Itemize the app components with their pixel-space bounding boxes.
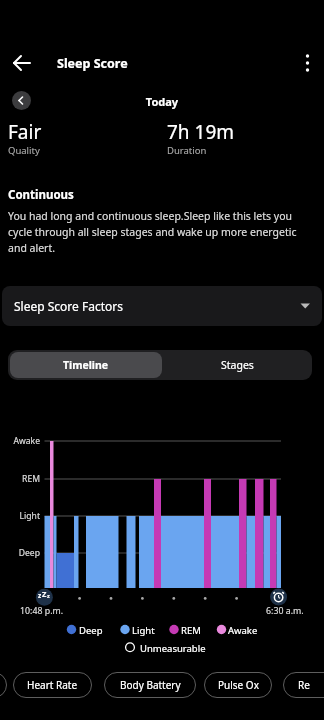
staticText: Re <box>298 678 310 692</box>
staticText: Deep <box>79 624 103 637</box>
staticText: Unmeasurable <box>140 642 206 655</box>
staticText: REM <box>181 624 201 637</box>
staticText: and alert. <box>8 241 56 255</box>
staticText: Light <box>0 510 40 522</box>
staticText: REM <box>0 473 40 485</box>
staticText: Light <box>132 624 155 637</box>
staticText: z <box>47 592 50 599</box>
button[interactable]: Timeline <box>10 352 162 378</box>
staticText: Sleep Score Factors <box>14 298 123 314</box>
staticText: Fair <box>8 119 42 145</box>
staticText: Z <box>42 589 47 599</box>
staticText: Duration <box>167 144 207 157</box>
staticText: Body Battery <box>120 678 181 692</box>
button[interactable] <box>0 672 7 698</box>
staticText: Sleep Score <box>57 55 128 72</box>
staticText: You had long and continuous sleep.Sleep … <box>8 209 292 223</box>
button[interactable] <box>12 91 31 110</box>
staticText: Heart Rate <box>27 678 78 692</box>
staticText: Continuous <box>8 187 74 203</box>
staticText: Quality <box>8 144 40 157</box>
button[interactable]: Pulse Ox <box>204 672 272 698</box>
staticText: Today <box>0 94 324 109</box>
staticText: Stages <box>221 358 254 372</box>
staticText: z <box>38 591 42 600</box>
staticText: 10:48 p.m. <box>20 605 64 617</box>
staticText: 7h 19m <box>167 119 235 145</box>
button[interactable]: Stages <box>162 352 313 378</box>
staticText: Awake <box>0 435 40 447</box>
button[interactable]: Body Battery <box>104 672 196 698</box>
button[interactable]: Sleep Score Factors <box>2 286 322 326</box>
staticText: Timeline <box>63 358 109 372</box>
staticText: cycle through all sleep stages and wake … <box>8 225 297 239</box>
staticText: Awake <box>228 624 258 637</box>
button[interactable]: Heart Rate <box>13 672 92 698</box>
staticText: Pulse Ox <box>218 678 259 692</box>
button[interactable] <box>6 47 38 79</box>
button[interactable]: Re <box>283 672 324 698</box>
staticText: Deep <box>0 547 40 559</box>
button[interactable] <box>294 47 320 79</box>
staticText: 6:30 a.m. <box>266 605 304 617</box>
